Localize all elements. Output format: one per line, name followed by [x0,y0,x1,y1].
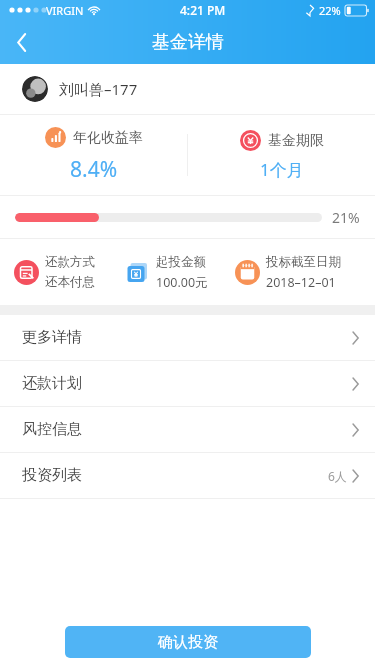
staticText: 还款计划 [22,374,82,393]
staticText: 6人 [328,468,347,484]
staticText: 还本付息 [45,274,95,290]
staticText: 基金详情 [152,31,224,54]
button[interactable]: 风控信息 [0,407,375,452]
staticText: 1个月 [260,158,304,181]
staticText: 刘叫兽–177 [59,79,138,99]
staticText: 风控信息 [22,420,82,439]
staticText: 基金期限 [268,132,324,150]
staticText: 投资列表 [22,466,82,485]
button[interactable]: 刘叫兽–177 [0,64,375,114]
staticText: 22% [319,3,341,18]
staticText: 年化收益率 [73,129,143,147]
staticText: 21% [332,208,360,227]
staticText: 100.00元 [156,274,208,291]
staticText: 8.4% [70,155,118,184]
button[interactable]: 投资列表 [0,453,375,498]
staticText: 起投金额 [156,254,206,270]
button[interactable]: 确认投资 [65,626,311,658]
button[interactable]: 还款计划 [0,361,375,406]
staticText: 4:21 PM [180,2,226,18]
staticText: 更多详情 [22,328,82,347]
staticText: 确认投资 [158,633,218,652]
staticText: 还款方式 [45,254,95,270]
staticText: VIRGIN [46,3,84,18]
button[interactable]: 更多详情 [0,315,375,360]
staticText: 投标截至日期 [266,254,341,270]
staticText: 2018–12–01 [266,274,336,291]
button[interactable]: Back [0,20,44,64]
